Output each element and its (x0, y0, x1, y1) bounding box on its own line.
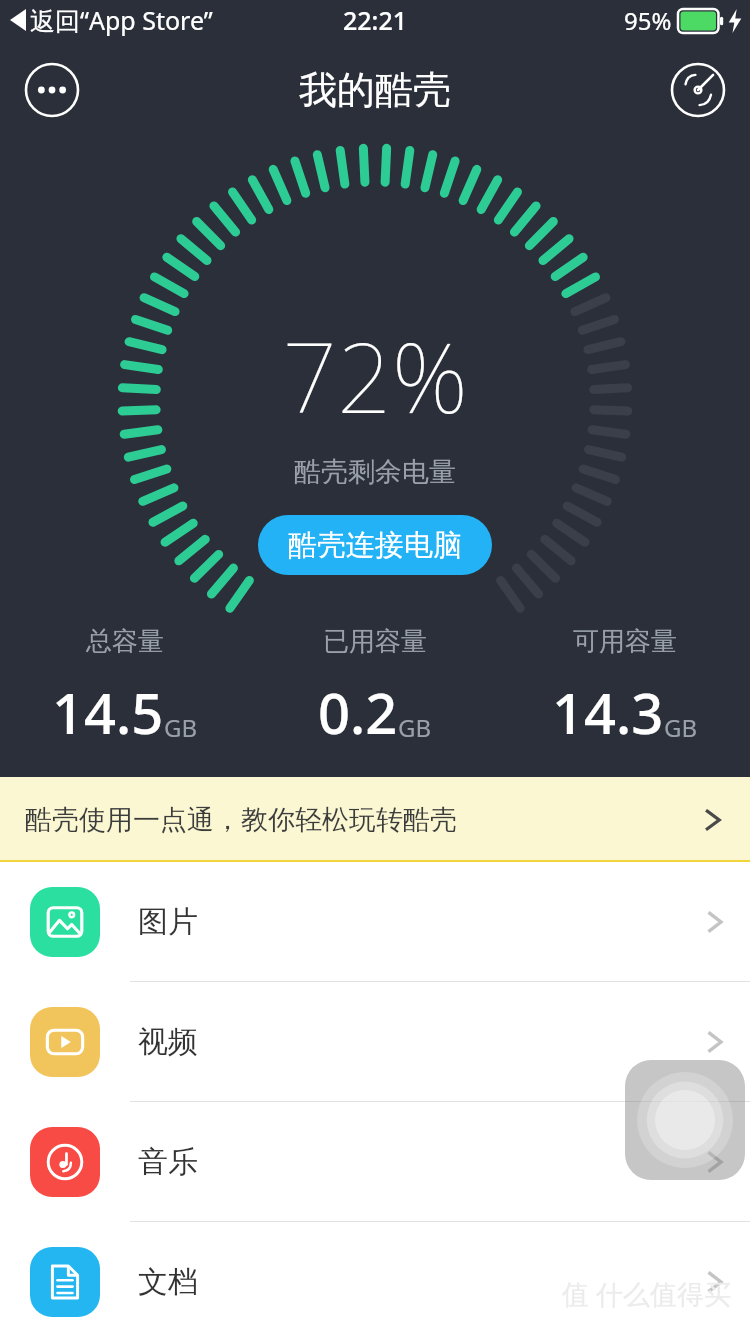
staticText: 22:21 (343, 3, 408, 37)
button[interactable]: 视频 (0, 982, 750, 1102)
staticText: GB (664, 711, 698, 744)
staticText: 酷壳使用一点通，教你轻松玩转酷壳 (25, 803, 457, 837)
staticText: 0.2 (318, 674, 398, 750)
button[interactable]: 文档 (0, 1222, 750, 1334)
button[interactable]: 音乐 (0, 1102, 750, 1222)
staticText: 返回“App Store” (30, 3, 213, 37)
staticText: GB (164, 711, 198, 744)
button[interactable]: AssistiveTouch (625, 1060, 745, 1180)
staticText: 酷壳连接电脑 (288, 527, 462, 564)
button[interactable]: Speed test (670, 62, 726, 118)
staticText: 值 什么值得买 (562, 1275, 732, 1312)
staticText: 已用容量 (323, 625, 427, 658)
staticText: 音乐 (138, 1143, 198, 1181)
staticText: GB (398, 711, 432, 744)
button[interactable]: 酷壳连接电脑 (258, 515, 492, 575)
staticText: 72% (282, 310, 468, 441)
staticText: 文档 (138, 1263, 198, 1301)
button[interactable]: More (24, 62, 80, 118)
staticText: 图片 (138, 903, 198, 941)
staticText: 视频 (138, 1023, 198, 1061)
staticText: 总容量 (86, 625, 164, 658)
button[interactable]: 图片 (0, 862, 750, 982)
staticText: 14.3 (552, 674, 664, 750)
staticText: 14.5 (52, 674, 164, 750)
staticText: 酷壳剩余电量 (294, 455, 456, 489)
staticText: 我的酷壳 (299, 66, 451, 114)
staticText: 95% (624, 4, 672, 37)
button[interactable]: 酷壳使用一点通，教你轻松玩转酷壳 (0, 777, 750, 862)
staticText: 可用容量 (573, 625, 677, 658)
